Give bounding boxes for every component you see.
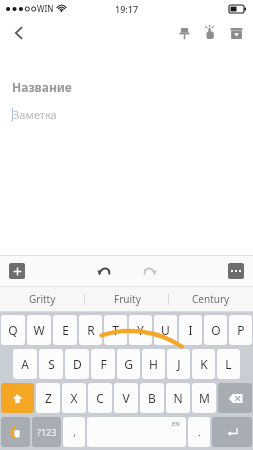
staticText: P [237, 322, 245, 338]
staticText: ?123 [37, 426, 57, 438]
button[interactable]: L [217, 349, 240, 379]
button[interactable]: E [53, 315, 77, 345]
button[interactable]: S [39, 349, 63, 379]
button[interactable]: Add [9, 263, 25, 279]
staticText: B [148, 390, 156, 406]
staticText: H [149, 356, 158, 372]
button[interactable]: G [117, 349, 140, 379]
button[interactable]: Backspace [218, 383, 252, 413]
button[interactable]: Fruity [85, 286, 169, 312]
button[interactable]: B [140, 383, 164, 413]
button[interactable]: Handwriting input [1, 417, 30, 447]
button[interactable]: Q [1, 315, 25, 345]
staticText: M [199, 390, 210, 406]
button[interactable]: N [166, 383, 190, 413]
button[interactable]: K [192, 349, 215, 379]
staticText: F [100, 356, 107, 372]
staticText: U [161, 322, 170, 338]
staticText: Fruity [114, 292, 141, 306]
button[interactable]: Century [169, 286, 253, 312]
staticText: Y [137, 322, 144, 338]
button[interactable]: M [192, 383, 216, 413]
button[interactable]: , [63, 417, 85, 447]
staticText: EN [172, 420, 180, 428]
staticText: Q [8, 322, 18, 338]
button[interactable]: V [114, 383, 138, 413]
button[interactable]: Undo [93, 260, 115, 282]
staticText: E [62, 322, 69, 338]
staticText: A [21, 356, 29, 372]
button[interactable]: F [91, 349, 115, 379]
button[interactable]: J [167, 349, 190, 379]
staticText: WIN [37, 3, 54, 14]
button[interactable]: R [79, 315, 102, 345]
button[interactable]: Z [36, 383, 60, 413]
staticText: J [177, 356, 181, 372]
staticText: Gritty [29, 292, 56, 306]
staticText: G [124, 356, 133, 372]
staticText: R [87, 322, 95, 338]
staticText: N [173, 390, 183, 406]
staticText: I [188, 322, 193, 338]
button[interactable]: I [179, 315, 202, 345]
button[interactable]: D [65, 349, 89, 379]
staticText: Century [192, 292, 230, 306]
staticText: S [48, 356, 55, 372]
button[interactable]: Space [87, 417, 186, 447]
staticText: . [198, 426, 201, 438]
staticText: K [200, 356, 208, 372]
button[interactable]: Enter [212, 417, 252, 447]
staticText: Заметка [13, 107, 57, 122]
button[interactable]: . [188, 417, 210, 447]
button[interactable]: P [229, 315, 252, 345]
button[interactable]: Back [4, 18, 34, 48]
staticText: Z [45, 390, 52, 406]
button[interactable]: T [104, 315, 127, 345]
button[interactable]: Archive [223, 20, 249, 46]
button[interactable]: A [13, 349, 37, 379]
staticText: 19:17 [115, 3, 139, 15]
button[interactable]: Redo [139, 260, 161, 282]
staticText: T [112, 322, 119, 338]
staticText: V [122, 390, 130, 406]
button[interactable]: Y [129, 315, 152, 345]
button[interactable]: Handwriting [197, 20, 223, 46]
button[interactable]: H [142, 349, 165, 379]
staticText: L [225, 356, 232, 372]
staticText: , [73, 426, 76, 438]
button[interactable]: Pin [171, 20, 197, 46]
button[interactable]: U [154, 315, 177, 345]
staticText: Название [12, 79, 72, 95]
button[interactable]: Gritty [0, 286, 85, 312]
button[interactable]: More options [228, 263, 244, 279]
staticText: D [73, 356, 82, 372]
staticText: W [33, 322, 45, 338]
button[interactable]: O [204, 315, 227, 345]
button[interactable]: Shift [1, 383, 34, 413]
button[interactable]: W [27, 315, 51, 345]
button[interactable]: ?123 [32, 417, 61, 447]
button[interactable]: C [88, 383, 112, 413]
staticText: O [211, 322, 221, 338]
staticText: X [70, 390, 78, 406]
staticText: C [96, 390, 104, 406]
button[interactable]: X [62, 383, 86, 413]
